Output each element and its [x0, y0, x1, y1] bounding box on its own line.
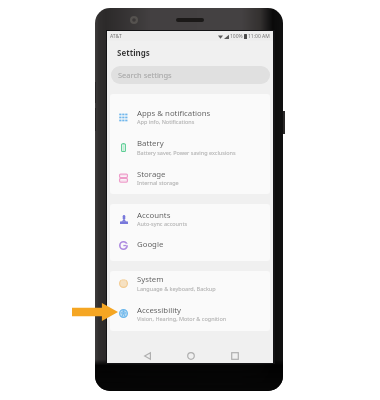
- button[interactable]: Recent apps: [228, 349, 242, 363]
- staticText: 11:00 AM: [248, 33, 270, 40]
- button[interactable]: [107, 297, 273, 327]
- button[interactable]: [107, 101, 273, 131]
- button[interactable]: [107, 267, 273, 297]
- staticText: Accounts: [137, 210, 171, 221]
- staticText: Apps & notifications: [137, 108, 211, 119]
- staticText: App info, Notifications: [137, 118, 195, 125]
- button[interactable]: Search settings: [111, 66, 270, 84]
- staticText: Settings: [117, 47, 150, 58]
- staticText: Vision, Hearing, Motor & cognition: [137, 315, 227, 322]
- staticText: Google: [137, 239, 164, 250]
- staticText: Storage: [137, 169, 166, 180]
- button[interactable]: [107, 202, 273, 232]
- staticText: Language & keyboard, Backup: [137, 285, 216, 292]
- button[interactable]: [107, 161, 273, 191]
- staticText: AT&T: [110, 33, 122, 40]
- staticText: Battery: [137, 138, 164, 149]
- button[interactable]: [107, 131, 273, 161]
- button[interactable]: [107, 232, 273, 262]
- button[interactable]: Home: [184, 349, 198, 363]
- staticText: Accessibility: [137, 305, 181, 316]
- button[interactable]: Back: [140, 349, 154, 363]
- staticText: 100%: [230, 33, 243, 40]
- staticText: Search settings: [118, 70, 172, 80]
- staticText: Internal storage: [137, 179, 179, 186]
- staticText: System: [137, 274, 164, 285]
- staticText: Battery saver, Power saving exclusions: [137, 149, 236, 156]
- staticText: Auto-sync accounts: [137, 220, 188, 227]
